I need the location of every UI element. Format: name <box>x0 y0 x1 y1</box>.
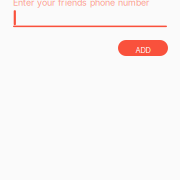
button[interactable]: Enter your friends phone number <box>13 0 167 30</box>
staticText: Enter your friends phone number <box>13 0 149 8</box>
staticText: ADD <box>135 46 150 55</box>
button[interactable]: ADD <box>118 40 168 56</box>
